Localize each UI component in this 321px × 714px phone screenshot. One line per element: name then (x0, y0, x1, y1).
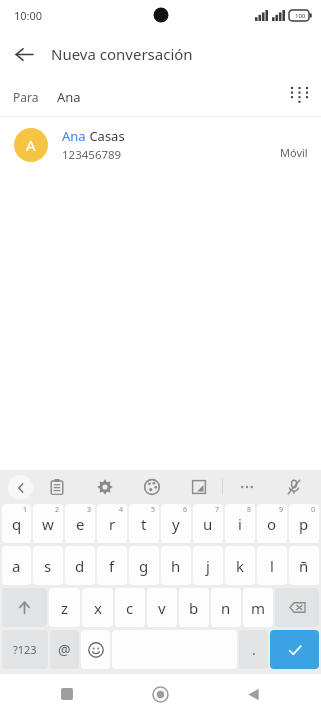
button[interactable]: Shift (2, 588, 47, 627)
button[interactable]: i (225, 504, 255, 543)
staticText: Casas (86, 127, 125, 145)
button[interactable]: b (179, 588, 209, 627)
button[interactable]: a (2, 546, 31, 585)
button[interactable]: k (225, 546, 255, 585)
staticText: w (42, 514, 54, 534)
button[interactable]: o (257, 504, 287, 543)
staticText: i (238, 514, 242, 534)
button[interactable]: @ (50, 630, 79, 669)
staticText: 0 (311, 505, 316, 515)
button[interactable]: Dialpad (277, 78, 321, 116)
button[interactable]: p (289, 504, 319, 543)
button[interactable]: l (257, 546, 287, 585)
staticText: k (236, 556, 245, 576)
staticText: q (12, 514, 22, 534)
button[interactable]: Settings (81, 470, 128, 504)
staticText: Para (13, 89, 39, 105)
staticText: m (251, 598, 266, 618)
button[interactable]: Close toolbar (8, 475, 33, 500)
button[interactable]: z (49, 588, 80, 627)
staticText: p (299, 514, 309, 534)
button[interactable]: v (147, 588, 177, 627)
staticText: 5 (151, 505, 156, 515)
staticText: x (94, 598, 102, 618)
button[interactable]: e (65, 504, 95, 543)
staticText: j (206, 556, 210, 576)
staticText: y (172, 514, 180, 534)
staticText: 100 (295, 12, 306, 20)
staticText: c (126, 598, 134, 618)
button[interactable]: More (223, 470, 270, 504)
button[interactable]: Themes (128, 470, 175, 504)
button[interactable]: c (115, 588, 145, 627)
staticText: 9 (279, 505, 284, 515)
button[interactable]: j (193, 546, 223, 585)
staticText: h (171, 556, 181, 576)
staticText: d (75, 556, 85, 576)
button[interactable]: q (2, 504, 31, 543)
button[interactable]: g (129, 546, 159, 585)
button[interactable]: d (65, 546, 95, 585)
staticText: Ana (57, 88, 81, 106)
staticText: Nueva conversación (51, 44, 193, 64)
staticText: A (26, 135, 36, 155)
staticText: 123456789 (62, 147, 122, 163)
button[interactable]: Home (140, 674, 180, 714)
staticText: @ (58, 640, 71, 659)
button[interactable]: n (211, 588, 241, 627)
staticText: 3 (87, 505, 92, 515)
button[interactable]: u (193, 504, 223, 543)
staticText: r (109, 514, 116, 534)
button[interactable]: . (239, 630, 268, 669)
button[interactable]: f (97, 546, 127, 585)
button[interactable]: h (161, 546, 191, 585)
button[interactable]: Back (0, 30, 48, 78)
button[interactable]: Enter (270, 630, 319, 669)
button[interactable]: y (161, 504, 191, 543)
button[interactable]: Voice input off (270, 470, 317, 504)
staticText: t (141, 514, 147, 534)
staticText: 6 (183, 505, 188, 515)
staticText: v (158, 598, 166, 618)
staticText: 8 (247, 505, 252, 515)
staticText: . (252, 640, 256, 659)
button[interactable]: r (97, 504, 127, 543)
staticText: z (61, 598, 69, 618)
button[interactable]: Recents (47, 674, 87, 714)
staticText: 10:00 (14, 8, 43, 23)
button[interactable]: m (243, 588, 273, 627)
staticText: ñ (299, 556, 309, 576)
button[interactable]: w (33, 504, 63, 543)
staticText: 2 (55, 505, 60, 515)
button[interactable]: Resize (175, 470, 222, 504)
staticText: u (203, 514, 213, 534)
button[interactable]: A (0, 117, 321, 173)
staticText: Ana (62, 127, 86, 145)
button[interactable]: Emoji (81, 630, 110, 669)
button[interactable]: Back (233, 674, 273, 714)
staticText: 1 (23, 505, 28, 515)
button[interactable]: ñ (289, 546, 319, 585)
staticText: e (76, 514, 85, 534)
button[interactable]: x (82, 588, 113, 627)
staticText: o (267, 514, 277, 534)
button[interactable]: Backspace (275, 588, 319, 627)
staticText: 7 (215, 505, 220, 515)
button[interactable]: ?123 (2, 630, 48, 669)
button[interactable]: t (129, 504, 159, 543)
staticText: Móvil (280, 145, 308, 160)
staticText: g (139, 556, 149, 576)
staticText: s (44, 556, 52, 576)
button[interactable]: s (33, 546, 63, 585)
staticText: a (12, 556, 21, 576)
staticText: ?123 (13, 642, 37, 657)
staticText: 4 (119, 505, 124, 515)
staticText: f (109, 556, 115, 576)
staticText: l (270, 556, 274, 576)
button[interactable]: Clipboard (33, 470, 81, 504)
staticText: b (189, 598, 199, 618)
staticText: n (221, 598, 231, 618)
